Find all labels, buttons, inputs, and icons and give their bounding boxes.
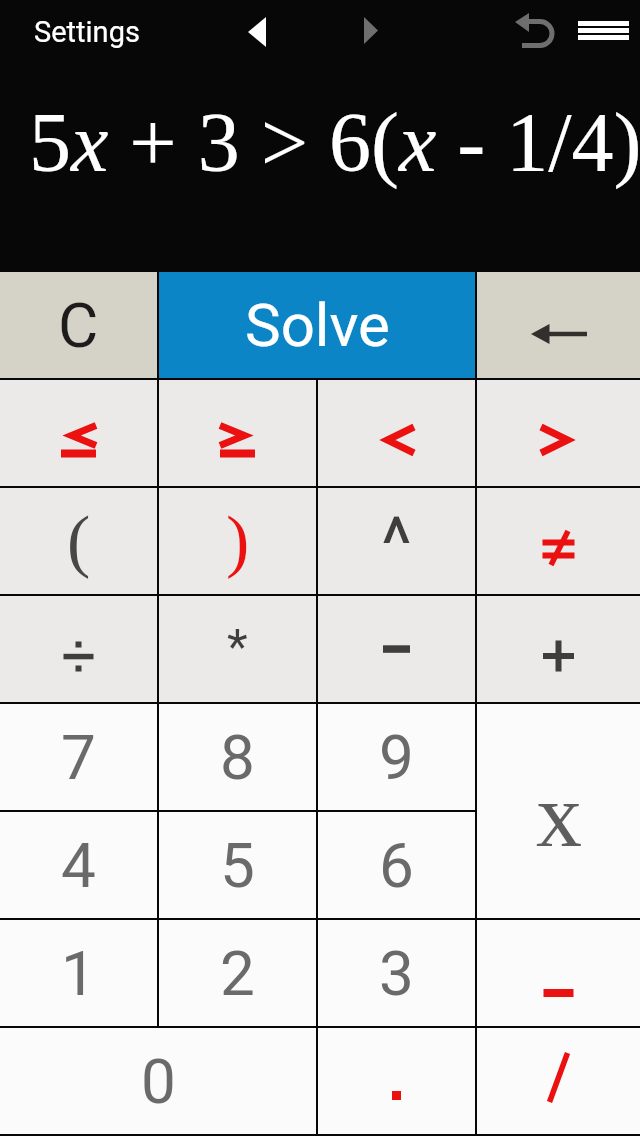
staticText: 9 xyxy=(379,721,414,794)
button[interactable] xyxy=(506,8,558,52)
button[interactable]: Solve xyxy=(159,272,475,378)
button[interactable]: 2 xyxy=(159,920,316,1026)
button[interactable]: 9 xyxy=(318,704,475,810)
button[interactable]: 5 xyxy=(159,812,316,918)
button[interactable]: x xyxy=(477,704,640,918)
button[interactable] xyxy=(0,380,157,486)
staticText: 5 xyxy=(220,829,255,902)
button[interactable] xyxy=(477,272,640,378)
button[interactable] xyxy=(477,920,640,1026)
staticText: 2 xyxy=(220,937,255,1010)
staticText: ) xyxy=(226,502,250,580)
button[interactable]: 8 xyxy=(159,704,316,810)
staticText: ^ xyxy=(381,500,412,587)
button[interactable]: * xyxy=(159,596,316,702)
button[interactable]: 4 xyxy=(0,812,157,918)
button[interactable]: 7 xyxy=(0,704,157,810)
button[interactable]: C xyxy=(0,272,157,378)
staticText: ( xyxy=(67,502,91,580)
staticText: * xyxy=(227,618,248,674)
button[interactable] xyxy=(0,596,157,702)
staticText: 3 xyxy=(379,937,414,1010)
button[interactable]: ^ xyxy=(318,488,475,594)
staticText: C xyxy=(58,289,99,362)
button[interactable]: ( xyxy=(0,488,157,594)
button[interactable] xyxy=(574,16,634,48)
staticText: 6 xyxy=(379,829,414,902)
button[interactable]: 1 xyxy=(0,920,157,1026)
button[interactable] xyxy=(318,596,475,702)
button[interactable] xyxy=(477,1028,640,1134)
button[interactable] xyxy=(352,8,392,54)
button[interactable] xyxy=(318,380,475,486)
button[interactable]: 3 xyxy=(318,920,475,1026)
staticText: 1 xyxy=(61,937,96,1010)
button[interactable]: 6 xyxy=(318,812,475,918)
button[interactable] xyxy=(477,488,640,594)
button[interactable]: 0 xyxy=(0,1028,316,1134)
staticText: 7 xyxy=(61,721,96,794)
button[interactable] xyxy=(159,380,316,486)
button[interactable] xyxy=(318,1028,475,1134)
button[interactable]: ) xyxy=(159,488,316,594)
button[interactable] xyxy=(477,596,640,702)
button[interactable] xyxy=(238,8,278,54)
staticText: x xyxy=(536,764,582,866)
staticText: 4 xyxy=(61,829,96,902)
button[interactable] xyxy=(477,380,640,486)
staticText: 5x + 3 > 6(x - 1/4) xyxy=(29,96,640,189)
button[interactable]: Settings xyxy=(34,15,140,49)
staticText: 0 xyxy=(141,1045,176,1118)
staticText: Solve xyxy=(245,290,390,360)
staticText: 8 xyxy=(220,721,255,794)
